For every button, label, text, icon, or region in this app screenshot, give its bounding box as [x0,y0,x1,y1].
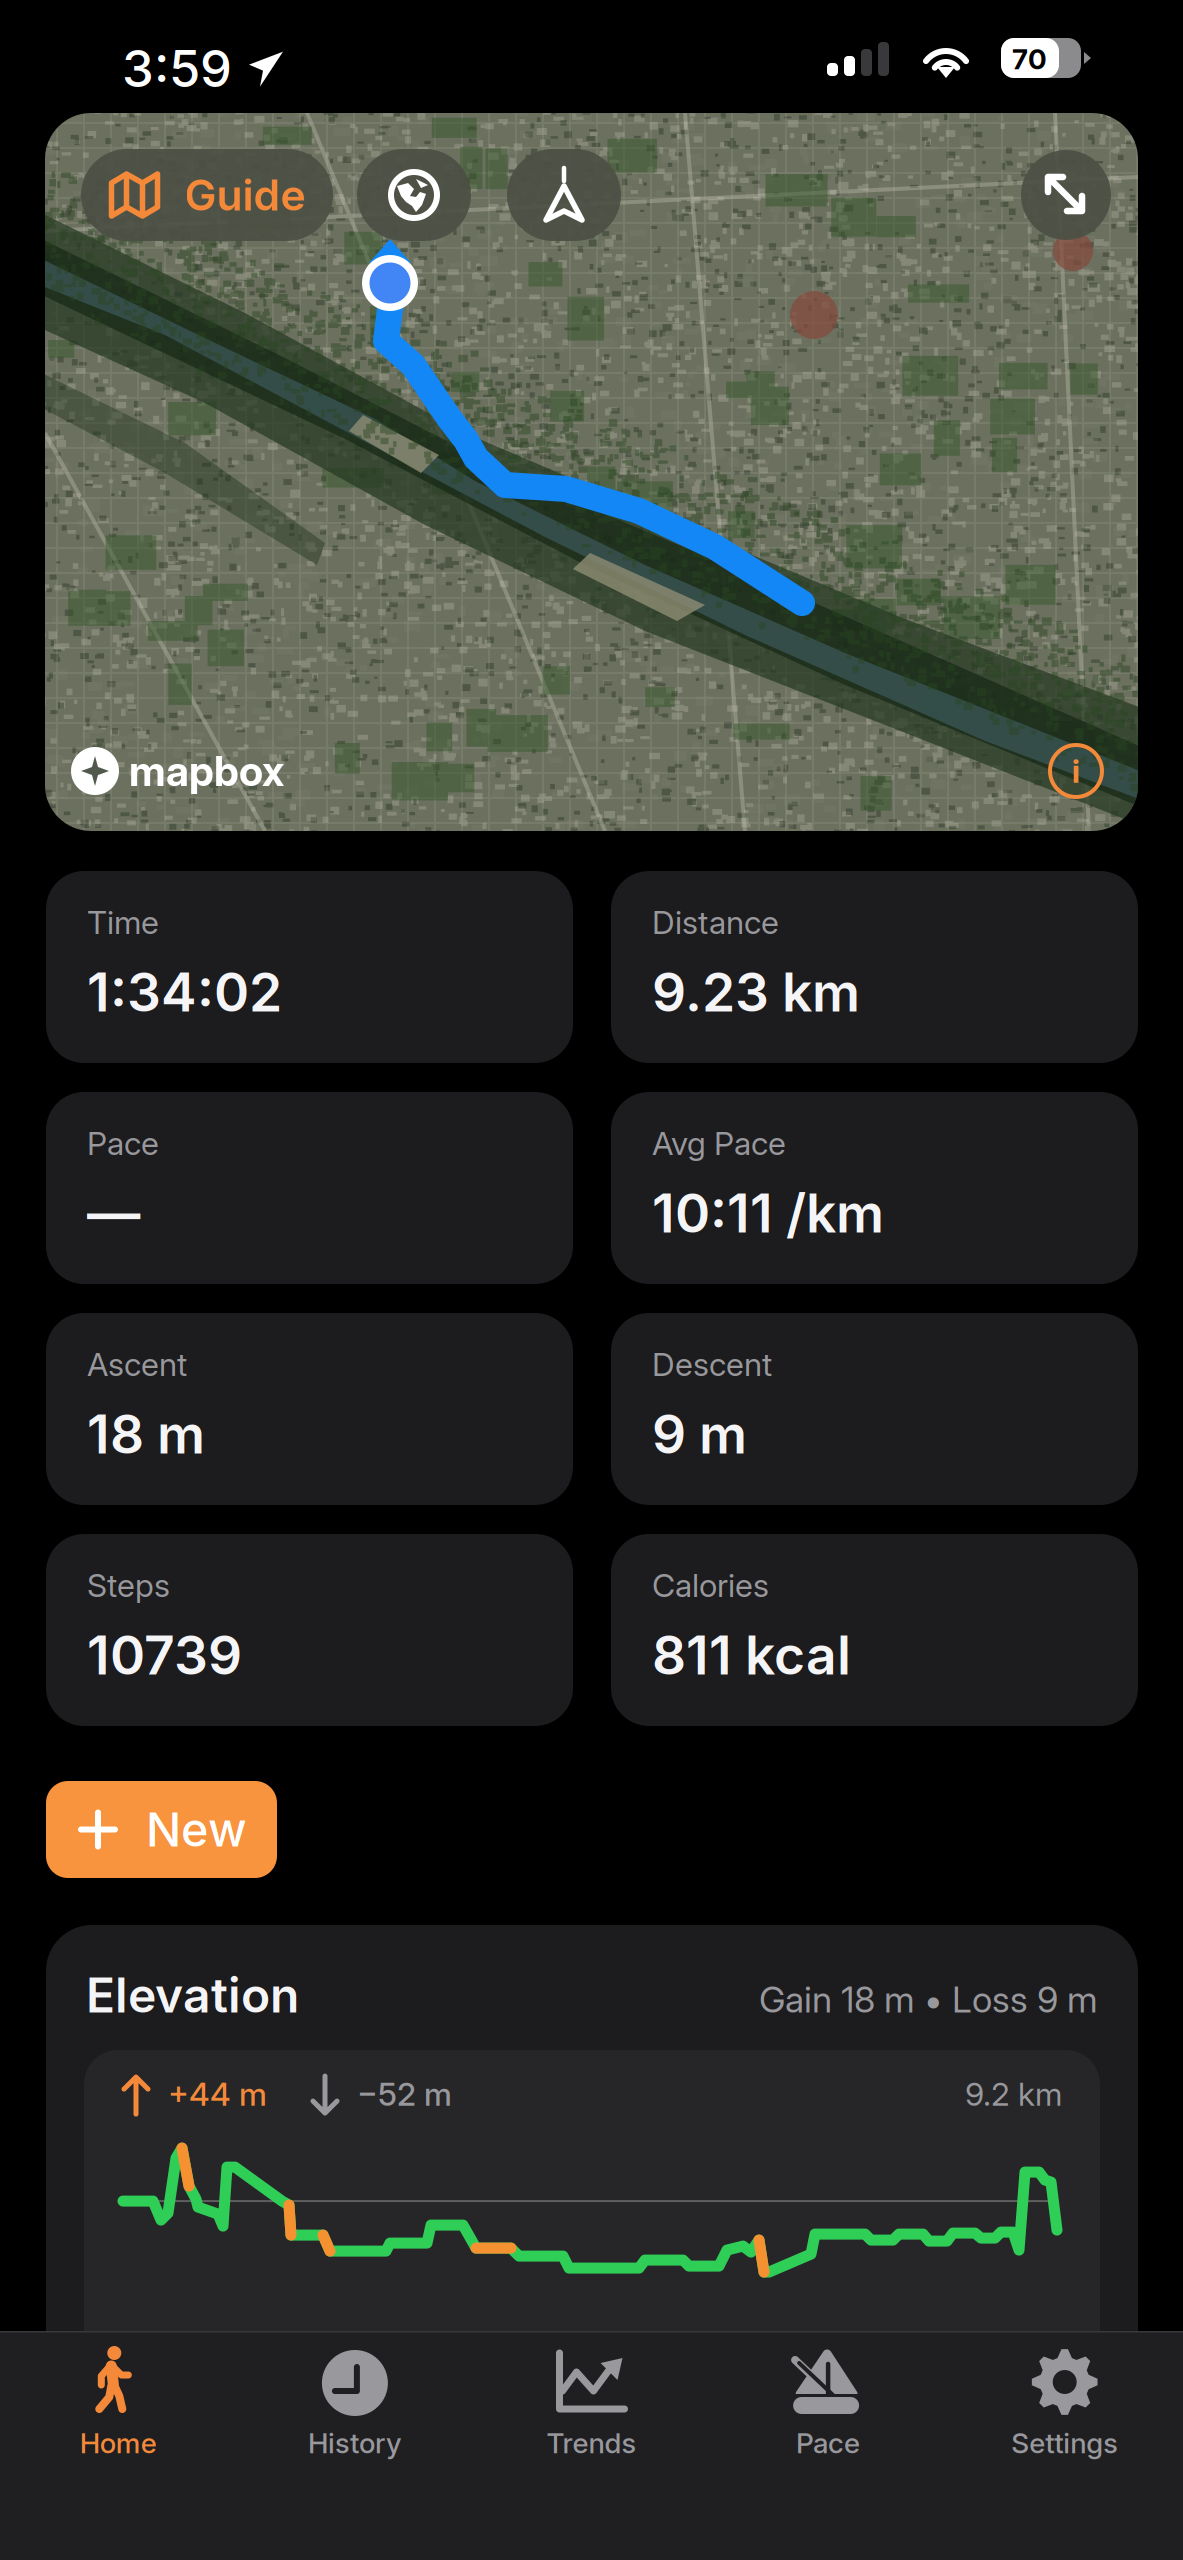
staticText: Elevation [86,1966,299,2024]
staticText: 811 kcal [652,1623,851,1687]
button[interactable]: Map style [357,149,471,241]
staticText: 10:11 /km [652,1181,884,1245]
button[interactable]: Heading [507,149,621,241]
button[interactable]: History [237,2331,473,2560]
staticText: 9 m [652,1402,747,1466]
staticText: 1:34:02 [87,960,282,1024]
staticText: New [146,1801,247,1858]
button[interactable]: Expand map [1021,150,1111,240]
staticText: Settings [1011,2426,1118,2460]
staticText: mapbox [129,746,284,796]
staticText: Guide [184,169,305,221]
staticText: Pace [87,1124,159,1163]
staticText: 70 [1012,42,1047,76]
button[interactable]: Trends [473,2331,710,2560]
staticText: 3:59 [122,38,232,99]
staticText: 10739 [87,1623,242,1687]
staticText: Calories [652,1566,769,1605]
staticText: — [87,1181,140,1245]
staticText: Distance [652,903,779,942]
staticText: Steps [87,1566,170,1605]
staticText: Descent [652,1345,772,1384]
staticText: Gain 18 m • Loss 9 m [759,1977,1098,2021]
button[interactable]: Pace [710,2331,946,2560]
staticText: Home [80,2426,157,2460]
button[interactable]: Home [0,2331,237,2560]
staticText: +44 m [168,2075,267,2113]
staticText: Avg Pace [652,1124,786,1163]
staticText: 9.2 km [965,2075,1062,2113]
staticText: i [1072,752,1080,790]
staticText: 9.23 km [652,960,860,1024]
staticText: Trends [546,2426,636,2460]
staticText: History [308,2426,402,2460]
staticText: 18 m [87,1402,205,1466]
staticText: −52 m [357,2075,452,2113]
staticText: Time [87,903,159,942]
button[interactable]: Guide [81,149,333,241]
button[interactable]: Settings [946,2331,1183,2560]
staticText: Pace [796,2426,860,2460]
staticText: Ascent [87,1345,187,1384]
button[interactable]: New [46,1781,277,1878]
